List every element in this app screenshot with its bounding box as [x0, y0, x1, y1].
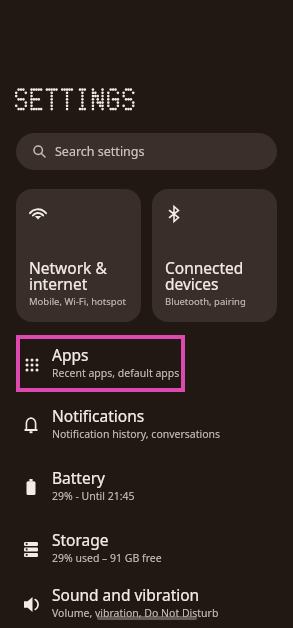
staticText: Search settings [55, 143, 145, 160]
staticText: 29% used – 91 GB free [52, 551, 162, 565]
staticText: Network & internet [29, 257, 107, 294]
staticText: Recent apps, default apps [52, 366, 180, 380]
button[interactable]: Sound and vibration [0, 579, 293, 628]
staticText: Bluetooth, pairing [165, 295, 246, 308]
staticText: Sound and vibration [52, 584, 200, 605]
button[interactable]: Network & internet [16, 189, 141, 322]
staticText: 29% - Until 21:45 [52, 489, 135, 503]
staticText: Apps [52, 344, 89, 365]
staticText: Notifications [52, 405, 145, 426]
button[interactable]: Notifications [0, 394, 293, 456]
staticText: Volume, vibration, Do Not Disturb [52, 606, 219, 620]
staticText: Battery [52, 467, 106, 488]
staticText: Mobile, Wi-Fi, hotspot [29, 295, 126, 308]
staticText: Storage [52, 529, 109, 550]
button[interactable]: Search settings [16, 133, 277, 170]
button[interactable]: Connected devices [152, 189, 277, 322]
button[interactable]: Battery [0, 456, 293, 518]
button[interactable]: Apps [0, 334, 293, 394]
staticText: Connected devices [165, 257, 244, 294]
staticText: Notification history, conversations [52, 427, 221, 441]
button[interactable]: Storage [0, 518, 293, 579]
